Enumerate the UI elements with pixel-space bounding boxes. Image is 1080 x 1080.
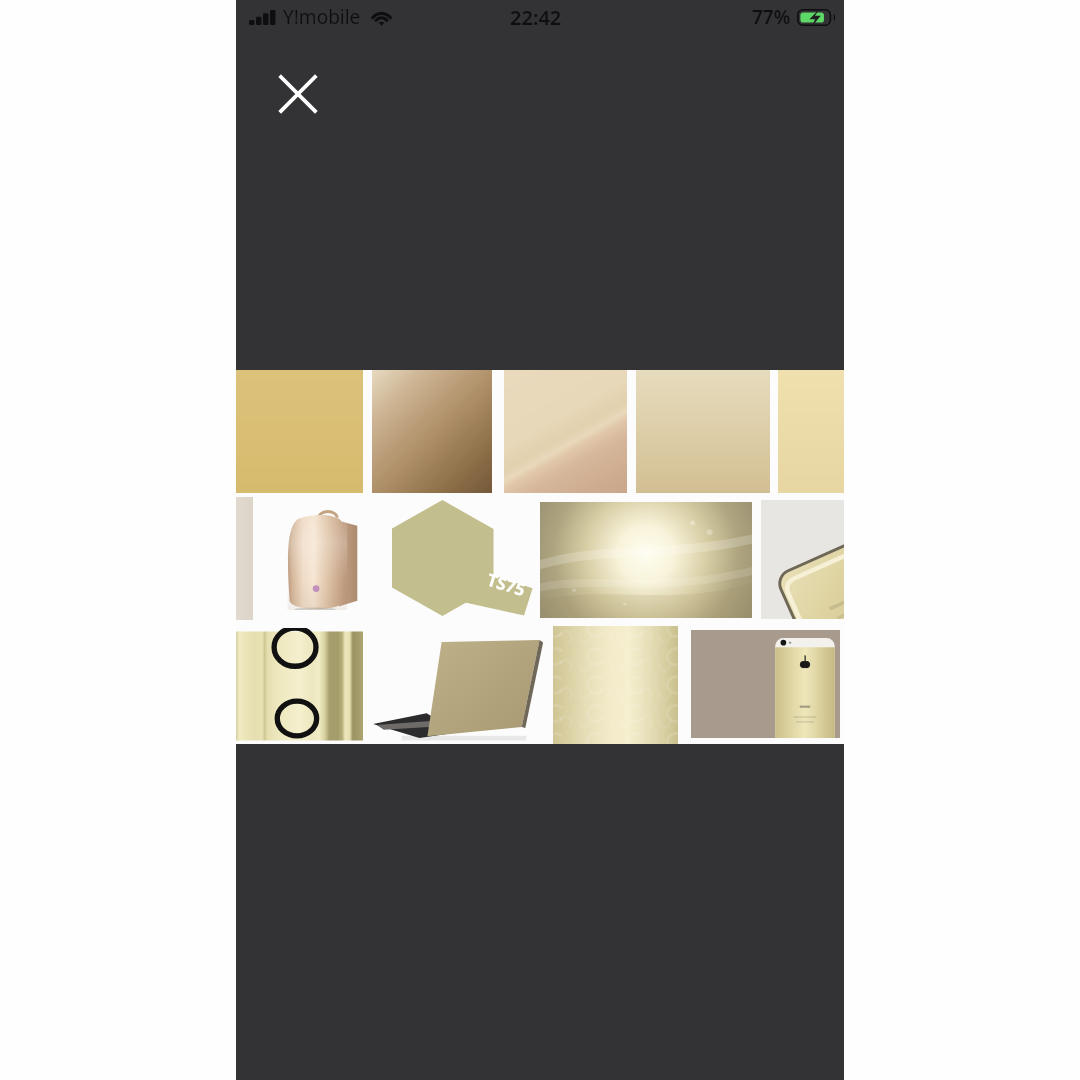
staticText: 22:42 bbox=[510, 4, 562, 31]
button[interactable] bbox=[236, 628, 363, 744]
button[interactable]: TS75 bbox=[392, 500, 534, 616]
button[interactable] bbox=[540, 502, 752, 618]
button[interactable] bbox=[761, 500, 844, 619]
button[interactable] bbox=[553, 626, 678, 744]
button[interactable] bbox=[372, 370, 492, 493]
button[interactable] bbox=[504, 370, 627, 493]
staticText: TS75 bbox=[484, 568, 528, 601]
button[interactable] bbox=[280, 508, 364, 610]
button[interactable] bbox=[686, 626, 844, 744]
staticText: Y!mobile bbox=[283, 4, 361, 30]
button[interactable]: Close bbox=[266, 62, 330, 126]
button[interactable] bbox=[366, 626, 544, 744]
button[interactable] bbox=[236, 370, 363, 493]
button[interactable] bbox=[636, 370, 770, 493]
button[interactable] bbox=[778, 370, 844, 493]
staticText: 77% bbox=[752, 4, 791, 30]
